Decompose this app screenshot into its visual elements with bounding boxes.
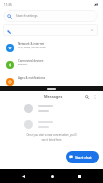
button[interactable]: Network & internet xyxy=(0,39,103,56)
staticText: Messages xyxy=(44,94,63,99)
button[interactable]: Start chat xyxy=(66,151,99,163)
staticText: 11:35 xyxy=(4,3,12,7)
button[interactable]: Search xyxy=(82,92,91,101)
staticText: Wi-Fi, mobile, and data usage xyxy=(18,46,46,49)
staticText: Search settings xyxy=(16,14,38,18)
staticText: Apps & notifications xyxy=(18,76,46,80)
other: Expand suggestions xyxy=(90,28,94,32)
button[interactable]: Apps & notifications xyxy=(0,73,103,90)
staticText: Once you start a new conversation, you'l… xyxy=(25,133,78,142)
staticText: Network & internet xyxy=(18,42,45,46)
button[interactable]: Back xyxy=(16,169,30,183)
staticText: Bluetooth xyxy=(18,63,28,66)
button[interactable]: Expand suggestions xyxy=(3,24,98,36)
button[interactable]: More options xyxy=(90,92,99,101)
button[interactable]: Home xyxy=(45,169,59,183)
button[interactable]: Connected devices xyxy=(0,56,103,73)
button[interactable]: Recent apps xyxy=(72,169,86,183)
staticText: Start chat xyxy=(75,155,92,160)
button[interactable]: Search settings xyxy=(3,10,98,22)
staticText: Connected devices xyxy=(18,59,44,63)
